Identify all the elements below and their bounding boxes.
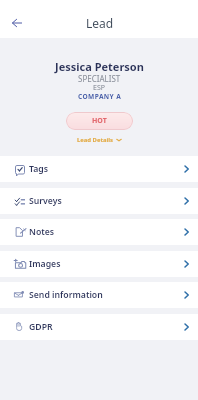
button[interactable]: Surveys (0, 188, 198, 214)
button[interactable]: Back (4, 10, 30, 36)
staticText: Surveys (29, 195, 62, 207)
button[interactable]: HOT (66, 112, 133, 130)
staticText: HOT (92, 116, 107, 126)
staticText: ESP (93, 83, 105, 93)
staticText: GDPR (29, 321, 53, 333)
button[interactable]: Tags (0, 156, 198, 182)
button[interactable]: Images (0, 251, 198, 277)
staticText: Notes (29, 226, 55, 238)
staticText: COMPANY A (78, 92, 122, 101)
button[interactable]: Notes (0, 219, 198, 245)
button[interactable]: GDPR (0, 314, 198, 340)
staticText: Lead Details (77, 136, 113, 144)
staticText: Jessica Peterson (55, 59, 144, 74)
button[interactable]: Lead Details (77, 136, 122, 144)
staticText: Lead (86, 15, 114, 31)
button[interactable]: Send information (0, 282, 198, 308)
staticText: Tags (29, 163, 49, 175)
staticText: SPECIALIST (78, 73, 121, 84)
staticText: Send information (29, 289, 103, 301)
staticText: Images (29, 258, 61, 270)
